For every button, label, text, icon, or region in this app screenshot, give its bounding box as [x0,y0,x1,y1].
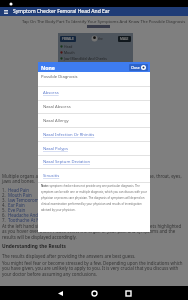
staticText: the [98,37,103,41]
button[interactable]: 7. [2,217,188,222]
button[interactable]: 3. [2,197,188,202]
staticText: Nasal Infection Or Rhinitis [43,132,95,138]
button[interactable]: Close [129,64,148,71]
staticText: Nasal Polyps [43,146,68,152]
button[interactable]: Jaw (Mandible) And Cheeks [60,56,131,61]
button[interactable]: Mouth [60,50,131,55]
staticText: Toothache At Night [8,217,48,222]
button[interactable]: Sinusitis [38,169,150,182]
staticText: Tap On The Body Part To Identify Your Sy… [22,19,186,25]
staticText: None [41,64,55,71]
staticText: Head Pain [8,187,30,192]
button[interactable]: 5. [2,207,188,212]
staticText: Sinusitis [43,173,60,179]
staticText: 1. [2,187,8,192]
button[interactable]: FEMALE [60,36,76,42]
button[interactable]: Nasal Polyps [38,142,150,155]
staticText: Abscess [43,90,59,96]
staticText: 5. [2,207,8,212]
staticText: Nasal Septum Deviation [43,159,91,165]
staticText: Symptom Checker Femoral Head And Ear [13,8,110,15]
staticText: Nasal Allergy [43,118,69,124]
button[interactable]: Menu [2,8,10,16]
staticText: FEMALE [62,37,74,41]
staticText: Close [131,65,140,70]
button[interactable]: 6. [2,212,188,217]
button[interactable]: 1. [2,187,188,192]
button[interactable]: Nasal Infection Or Rhinitis [38,128,150,141]
button[interactable]: 2. [2,192,188,197]
staticText: MALE [120,37,129,41]
staticText: You might feel fear or become stressed b… [2,260,186,278]
staticText: Headache And Facial Pain [8,212,61,217]
staticText: 3. [2,197,8,202]
button[interactable]: Avatar [91,35,98,42]
staticText: 6. [2,212,8,217]
button[interactable]: Abscess [38,86,150,99]
button[interactable]: 4. [2,202,188,207]
staticText: 7. [2,217,8,222]
staticText: Mouth [64,50,75,55]
staticText: Mouth Pain [8,192,32,197]
button[interactable]: Nasal Septum Deviation [38,155,150,168]
button[interactable]: Home [86,286,102,300]
staticText: 4. [2,202,8,207]
button[interactable]: Head [60,44,131,49]
staticText: Eye Pain [8,207,26,212]
staticText: Multiple organs are present in the head … [2,173,186,185]
staticText: Ear Pain [8,202,25,207]
button[interactable]: Nasal Abscess [38,100,150,113]
staticText: Understanding the Results [2,243,66,250]
staticText: At the left hand side, all the organs ar… [2,223,186,241]
button[interactable]: MALE [118,36,131,42]
staticText: Note: symptom checker does not provide a… [41,184,148,212]
staticText: Head [64,44,73,49]
button[interactable]: Nasal Allergy [38,114,150,127]
staticText: Jaw (Mandible) And Cheeks [64,56,107,61]
staticText: 2. [2,192,8,197]
button[interactable]: Back [52,286,68,300]
staticText: Jaw Temporomandibular Joint [8,197,70,202]
staticText: Possible Diagnosis [41,74,78,80]
staticText: The results displayed after providing th… [2,253,136,259]
staticText: Nasal Abscess [43,104,71,110]
button[interactable]: Recents [120,286,136,300]
